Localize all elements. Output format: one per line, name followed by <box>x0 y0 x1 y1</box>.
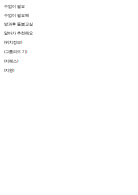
staticText: (위치정보) <box>4 40 22 45</box>
staticText: (지원) <box>4 68 14 73</box>
staticText: 방과후 돌봄교실 <box>4 22 33 27</box>
staticText: (지혜스) <box>4 58 18 64</box>
staticText: 알바가 추천해요 <box>4 31 33 36</box>
staticText: (그룹피드 기) <box>4 49 27 54</box>
staticText: 수업이 필요 <box>4 4 25 9</box>
staticText: 수업이 필요해 <box>4 13 29 18</box>
